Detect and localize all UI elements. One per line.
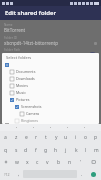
staticText: c [36,159,39,166]
button[interactable]: p [91,131,101,144]
button[interactable]: m [91,144,101,156]
button[interactable]: Shift [0,156,12,168]
staticText: Edit shared folder [5,9,56,17]
staticText: File Versioning [4,73,25,77]
button[interactable]: More [94,42,97,45]
button[interactable]: ?12 [0,168,14,180]
staticText: Admin: my team to access folder to acces… [4,64,94,70]
staticText: h [54,147,58,154]
staticText: y [55,134,58,141]
button[interactable]: n [64,156,75,168]
button[interactable]: Period [77,168,86,180]
staticText: Documents [16,69,36,74]
staticText: a [4,134,7,141]
staticText: s [15,147,18,154]
staticText: i [75,134,77,141]
staticText: b [57,159,61,166]
staticText: Screenshots [21,104,42,109]
button[interactable]: Ringtones [2,117,99,124]
button[interactable]: u [61,131,71,144]
button[interactable]: h [51,144,61,156]
staticText: m [94,147,99,154]
staticText: u [64,134,68,141]
button[interactable]: t [41,131,51,144]
button[interactable]: d [21,144,31,156]
button[interactable]: o [81,131,91,144]
staticText: k [75,147,78,154]
staticText: Music [16,90,26,95]
button[interactable] [2,61,99,68]
staticText: r [35,134,38,141]
staticText: BitTorrent [4,27,26,33]
staticText: x [26,159,29,166]
staticText: ' [80,159,82,166]
button[interactable]: y [51,131,61,144]
staticText: z [15,134,18,141]
staticText: j [65,147,67,154]
button[interactable]: s [11,144,21,156]
button[interactable]: Camera [2,110,99,117]
staticText: Folder ID [4,36,17,40]
staticText: Movies [16,83,28,88]
staticText: l [85,147,87,154]
staticText: Ringtones [21,118,39,123]
staticText: p [94,134,98,141]
button[interactable]: Pictures [2,96,99,103]
staticText: q [4,147,8,154]
staticText: o [84,134,88,141]
button[interactable]: b [53,156,64,168]
button[interactable]: ' [75,156,86,168]
staticText: /sdcard/sync/BitTorrent/ [4,54,56,60]
staticText: f [35,147,37,154]
staticText: Folder Path [4,48,21,52]
staticText: , [18,171,20,178]
button[interactable]: j [61,144,71,156]
button[interactable]: l [81,144,91,156]
button[interactable]: Browse [88,52,97,61]
button[interactable]: a [0,131,11,144]
button[interactable]: v [42,156,53,168]
button[interactable]: e [21,131,31,144]
button[interactable]: g [41,144,51,156]
staticText: Downloads [16,76,35,81]
staticText: ?12 [4,172,10,177]
button[interactable]: k [71,144,81,156]
staticText: t [45,134,47,141]
staticText: . [81,171,83,178]
staticText: Select folders [6,55,32,60]
staticText: n [68,159,72,166]
button[interactable]: Documents [2,68,99,75]
staticText: g [44,147,48,154]
button[interactable]: i [71,131,81,144]
button[interactable]: c [32,156,42,168]
button[interactable]: r [31,131,41,144]
button[interactable]: Movies [2,82,99,89]
staticText: Camera [26,111,40,116]
button[interactable]: z [11,131,21,144]
button[interactable]: Downloads [2,75,99,82]
button[interactable]: w [12,156,22,168]
button[interactable]: Enter [86,168,101,180]
button[interactable]: Backspace [86,156,101,168]
staticText: Name [4,23,13,27]
staticText: e [25,134,28,141]
staticText: d [24,147,28,154]
staticText: Pictures [16,97,30,102]
staticText: w [15,159,19,166]
button[interactable]: Screenshots [2,103,99,110]
button[interactable]: q [0,144,11,156]
button[interactable]: Comma [14,168,23,180]
staticText: xbcnpdt-14tzt-bittorrentp [4,40,58,46]
button[interactable]: f [31,144,41,156]
button[interactable]: Music [2,89,99,96]
button[interactable]: x [22,156,32,168]
staticText: v [46,159,49,166]
